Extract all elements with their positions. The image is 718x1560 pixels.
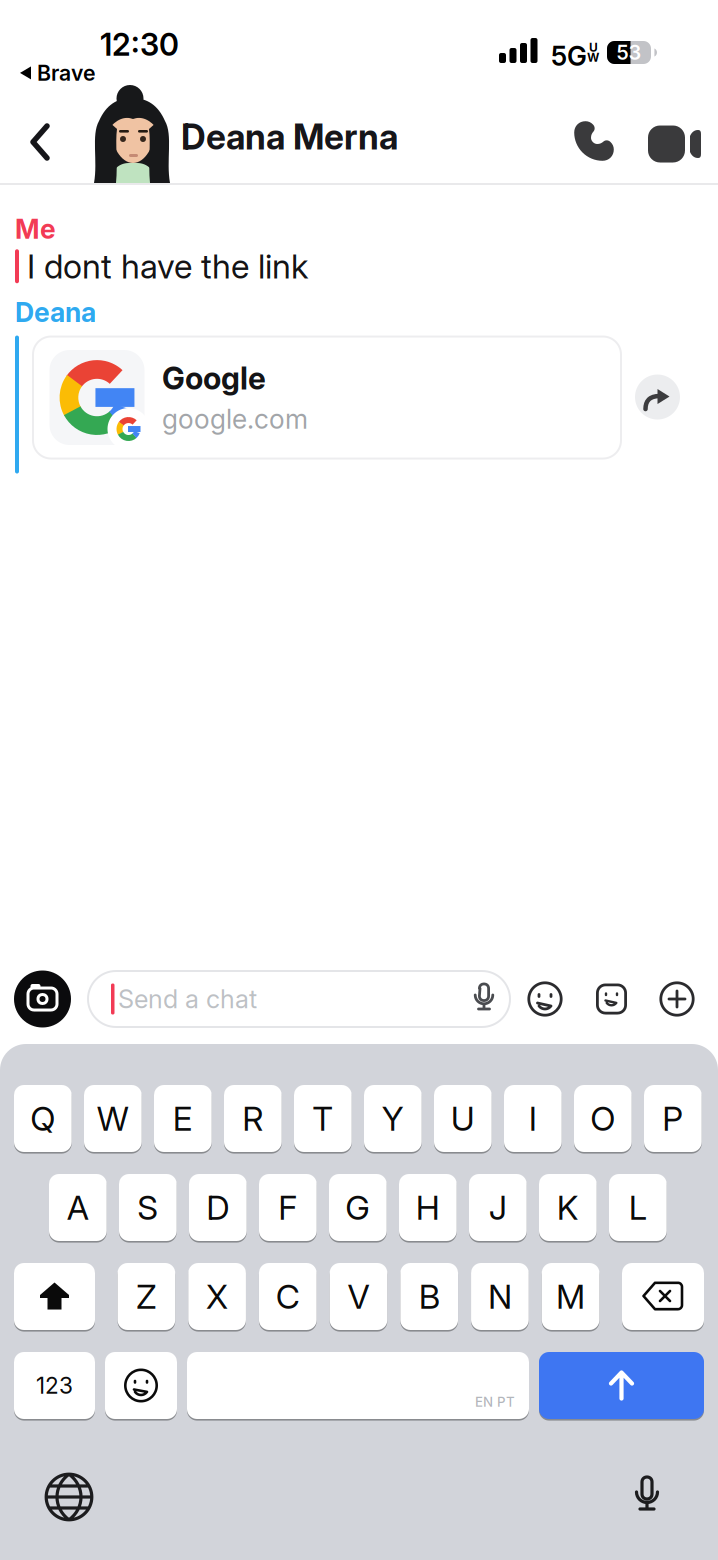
button[interactable]: Profile <box>92 85 182 183</box>
button[interactable]: Google <box>32 335 622 459</box>
button[interactable]: N <box>471 1262 529 1331</box>
button[interactable]: H <box>399 1173 457 1242</box>
staticText: A <box>67 1187 89 1228</box>
button[interactable]: Back <box>18 112 62 172</box>
button[interactable]: W <box>84 1084 142 1153</box>
button[interactable]: Forward <box>635 374 680 419</box>
button[interactable]: P <box>644 1084 702 1153</box>
button[interactable]: Q <box>14 1084 72 1153</box>
button[interactable]: Send a chat <box>87 970 511 1028</box>
staticText: Google <box>162 360 266 397</box>
staticText: J <box>489 1187 507 1228</box>
staticText: Brave <box>37 60 96 86</box>
staticText: W <box>97 1098 129 1139</box>
staticText: P <box>662 1098 683 1139</box>
button[interactable]: Space <box>187 1351 529 1420</box>
staticText: X <box>206 1276 228 1317</box>
staticText: Deana Merna <box>181 116 398 158</box>
button[interactable]: A <box>49 1173 107 1242</box>
staticText: 53 <box>616 40 641 65</box>
button[interactable]: C <box>259 1262 317 1331</box>
button[interactable]: S <box>119 1173 177 1242</box>
staticText: H <box>416 1187 440 1228</box>
staticText: T <box>312 1098 333 1139</box>
button[interactable]: X <box>188 1262 246 1331</box>
button[interactable]: F <box>259 1173 317 1242</box>
button[interactable]: K <box>539 1173 597 1242</box>
staticText: W <box>587 50 599 64</box>
staticText: N <box>488 1276 512 1317</box>
staticText: F <box>278 1187 297 1228</box>
staticText: D <box>206 1187 229 1228</box>
staticText: I dont have the link <box>27 246 308 286</box>
button[interactable]: I <box>504 1084 562 1153</box>
button[interactable]: G <box>329 1173 387 1242</box>
button[interactable]: J <box>469 1173 527 1242</box>
button[interactable]: T <box>294 1084 352 1153</box>
staticText: I <box>529 1098 537 1139</box>
button[interactable]: B <box>400 1262 458 1331</box>
button[interactable]: Call <box>566 111 622 171</box>
button[interactable]: Stickers <box>596 983 627 1014</box>
button[interactable]: Emoji <box>526 980 564 1018</box>
button[interactable]: Shift <box>14 1262 95 1331</box>
staticText: M <box>556 1276 585 1317</box>
button[interactable]: Camera <box>14 970 71 1027</box>
staticText: V <box>347 1276 369 1317</box>
button[interactable]: D <box>189 1173 247 1242</box>
button[interactable]: M <box>542 1262 599 1331</box>
button[interactable]: Z <box>118 1262 175 1331</box>
button[interactable]: O <box>574 1084 632 1153</box>
staticText: U <box>451 1098 475 1139</box>
staticText: 12:30 <box>100 26 179 63</box>
staticText: Send a chat <box>118 984 257 1014</box>
button[interactable]: Y <box>364 1084 422 1153</box>
staticText: 123 <box>36 1372 73 1399</box>
staticText: S <box>137 1187 158 1228</box>
button[interactable]: Send <box>539 1351 704 1420</box>
button[interactable]: U <box>434 1084 492 1153</box>
staticText: K <box>557 1187 579 1228</box>
button[interactable]: E <box>154 1084 212 1153</box>
button[interactable]: R <box>224 1084 282 1153</box>
staticText: Q <box>30 1098 55 1139</box>
staticText: L <box>629 1187 647 1228</box>
button[interactable]: Add <box>658 980 696 1018</box>
button[interactable]: Video call <box>648 114 701 174</box>
staticText: R <box>242 1098 263 1139</box>
staticText: Deana <box>15 296 96 329</box>
button[interactable]: V <box>330 1262 387 1331</box>
staticText: Me <box>15 213 56 245</box>
staticText: 5G <box>551 40 587 72</box>
button[interactable]: Next keyboard <box>44 1472 94 1522</box>
staticText: Y <box>382 1098 404 1139</box>
staticText: G <box>345 1187 370 1228</box>
staticText: google.com <box>162 403 308 435</box>
button[interactable]: L <box>609 1173 667 1242</box>
staticText: E <box>173 1098 193 1139</box>
staticText: O <box>590 1098 615 1139</box>
button[interactable]: Emoji <box>105 1351 177 1420</box>
button[interactable]: Dictation <box>630 1472 664 1524</box>
staticText: B <box>419 1276 440 1317</box>
button[interactable]: Delete <box>622 1262 704 1331</box>
staticText: U <box>589 40 598 54</box>
button[interactable]: Numbers <box>14 1351 95 1420</box>
staticText: C <box>276 1276 300 1317</box>
staticText: EN PT <box>475 1394 515 1410</box>
staticText: Z <box>136 1276 157 1317</box>
